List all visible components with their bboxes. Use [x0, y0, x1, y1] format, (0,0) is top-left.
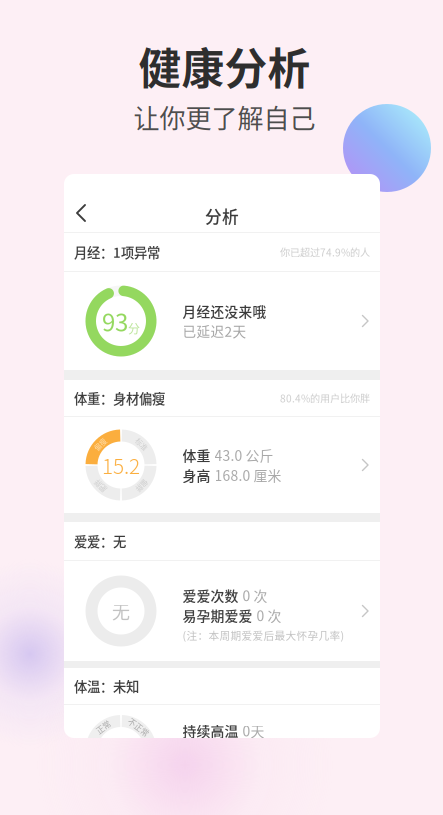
- staticText: 80.4%的用户比你胖: [280, 391, 370, 405]
- staticText: 93: [102, 304, 128, 338]
- button[interactable]: 正常: [64, 705, 380, 742]
- staticText: 爱爱次数: [182, 585, 238, 605]
- staticText: 0天: [242, 720, 264, 741]
- staticText: 偏胖: [135, 481, 149, 491]
- staticText: 月经还没来哦: [182, 301, 266, 321]
- staticText: 易孕期爱爱: [182, 605, 252, 625]
- staticText: 168.0 厘米: [214, 465, 281, 485]
- staticText: (注：本周期爱爱后最大怀孕几率): [182, 627, 344, 643]
- staticText: 0 次: [242, 585, 267, 605]
- staticText: 0 次: [256, 605, 281, 625]
- button[interactable]: 返回: [64, 194, 96, 232]
- staticText: 已延迟2天: [182, 321, 246, 341]
- staticText: 不正常: [127, 721, 151, 733]
- staticText: 身高: [182, 465, 210, 485]
- staticText: 爱爱：无: [74, 531, 126, 551]
- staticText: 让你更了解自己: [133, 98, 315, 136]
- staticText: 正常: [95, 721, 111, 733]
- button[interactable]: 标准: [64, 417, 380, 513]
- staticText: 标准: [135, 439, 149, 449]
- button[interactable]: 93: [64, 272, 380, 370]
- staticText: 持续高温: [182, 720, 238, 741]
- staticText: 体温：未知: [74, 676, 139, 696]
- staticText: 体重: [182, 445, 210, 465]
- staticText: 健康分析: [138, 35, 310, 97]
- button[interactable]: 无: [64, 561, 380, 661]
- staticText: 分析: [205, 204, 239, 228]
- staticText: 无: [112, 598, 130, 624]
- staticText: 你已超过74.9%的人: [280, 245, 370, 259]
- staticText: 肥胖: [93, 481, 107, 491]
- staticText: 偏瘦: [93, 439, 107, 449]
- staticText: 体重：身材偏瘦: [74, 388, 165, 408]
- staticText: 15.2: [102, 450, 140, 480]
- staticText: 43.0 公斤: [214, 445, 273, 465]
- staticText: 月经：1项异常: [74, 242, 160, 262]
- staticText: 分: [128, 319, 140, 337]
